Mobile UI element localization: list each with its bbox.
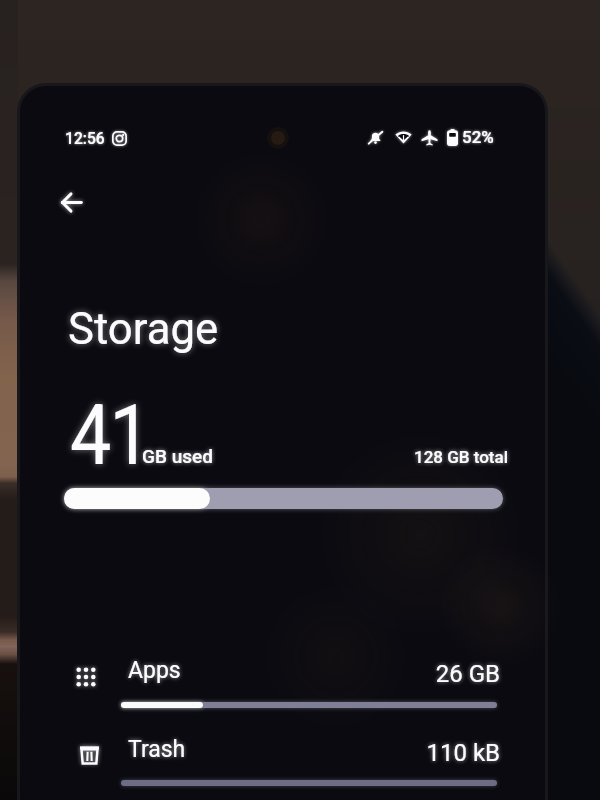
button[interactable]: Navigate up	[47, 178, 95, 226]
button[interactable]: Trash	[45, 736, 511, 798]
staticText: Apps	[128, 657, 181, 684]
staticText: 110 kB	[426, 739, 500, 767]
staticText: Storage	[68, 302, 219, 355]
staticText: 12:56	[65, 128, 105, 148]
staticText: 128 GB total	[414, 447, 509, 467]
staticText: 41	[70, 386, 150, 484]
staticText: Storage	[68, 302, 219, 355]
staticText: 26 GB	[435, 660, 500, 688]
staticText: 128 GB total	[414, 447, 509, 467]
staticText: Trash	[128, 736, 186, 763]
staticText: 12:56	[65, 128, 105, 148]
button[interactable]: Apps	[45, 657, 511, 719]
staticText: 26 GB	[435, 660, 500, 688]
staticText: 52%	[462, 127, 494, 147]
staticText: Apps	[128, 657, 181, 684]
staticText: GB used	[142, 445, 213, 467]
staticText: GB used	[142, 445, 213, 467]
staticText: 41	[70, 386, 150, 484]
staticText: Trash	[128, 736, 186, 763]
staticText: 110 kB	[426, 739, 500, 767]
staticText: 52%	[462, 127, 494, 147]
